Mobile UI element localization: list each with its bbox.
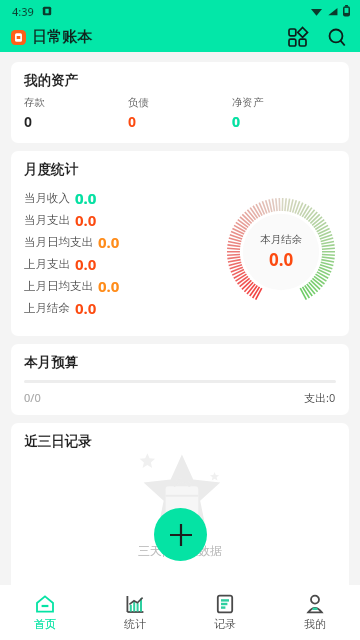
button[interactable]: Add record xyxy=(154,508,207,561)
staticText: 0 xyxy=(24,112,33,131)
button[interactable]: 当月日均支出 xyxy=(24,231,120,253)
button[interactable]: Search xyxy=(324,24,350,50)
staticText: 0.0 xyxy=(75,188,97,208)
button[interactable]: 当月收入 xyxy=(24,187,97,209)
button[interactable]: 上月结余 xyxy=(24,297,97,319)
staticText: 0.0 xyxy=(75,298,97,318)
staticText: 上月支出 xyxy=(24,257,70,271)
button[interactable]: 上月支出 xyxy=(24,253,97,275)
staticText: 0.0 xyxy=(75,210,97,230)
button[interactable]: 首页 xyxy=(0,585,90,640)
staticText: 0.0 xyxy=(98,232,120,252)
staticText: 0.0 xyxy=(98,276,120,296)
button[interactable]: 统计 xyxy=(90,585,180,640)
staticText: 我的 xyxy=(304,617,326,631)
staticText: 0 xyxy=(128,112,137,131)
button[interactable]: 当月支出 xyxy=(24,209,97,231)
staticText: 0.0 xyxy=(269,248,294,271)
staticText: 支出:0 xyxy=(304,390,336,405)
staticText: 日常账本 xyxy=(32,28,92,47)
button[interactable]: Categories xyxy=(284,24,310,50)
staticText: 本月预算 xyxy=(24,354,78,371)
staticText: 存款 xyxy=(24,96,45,109)
staticText: 记录 xyxy=(214,617,236,631)
button[interactable]: 记录 xyxy=(180,585,270,640)
button[interactable]: 月度统计 xyxy=(11,151,349,336)
staticText: 当月收入 xyxy=(24,191,70,205)
staticText: 首页 xyxy=(34,617,56,631)
staticText: 上月结余 xyxy=(24,301,70,315)
staticText: 当月支出 xyxy=(24,213,70,227)
staticText: 0 xyxy=(232,112,241,131)
staticText: 当月日均支出 xyxy=(24,235,93,249)
staticText: 0.0 xyxy=(75,254,97,274)
staticText: 统计 xyxy=(124,617,146,631)
button[interactable]: 我的资产 xyxy=(11,62,349,143)
staticText: 0/0 xyxy=(24,390,41,405)
button[interactable]: 本月预算 xyxy=(11,344,349,415)
staticText: 净资产 xyxy=(232,96,264,109)
button[interactable]: 我的 xyxy=(270,585,360,640)
staticText: 本月结余 xyxy=(260,233,302,246)
staticText: 月度统计 xyxy=(24,161,78,178)
staticText: 4:39 xyxy=(12,4,34,19)
staticText: 负债 xyxy=(128,96,149,109)
button[interactable]: 上月日均支出 xyxy=(24,275,120,297)
staticText: 我的资产 xyxy=(24,72,78,89)
staticText: 近三日记录 xyxy=(24,433,92,450)
staticText: 三天内暂无数据 xyxy=(138,543,222,558)
button[interactable]: 近三日记录 xyxy=(11,423,349,585)
staticText: 上月日均支出 xyxy=(24,279,93,293)
